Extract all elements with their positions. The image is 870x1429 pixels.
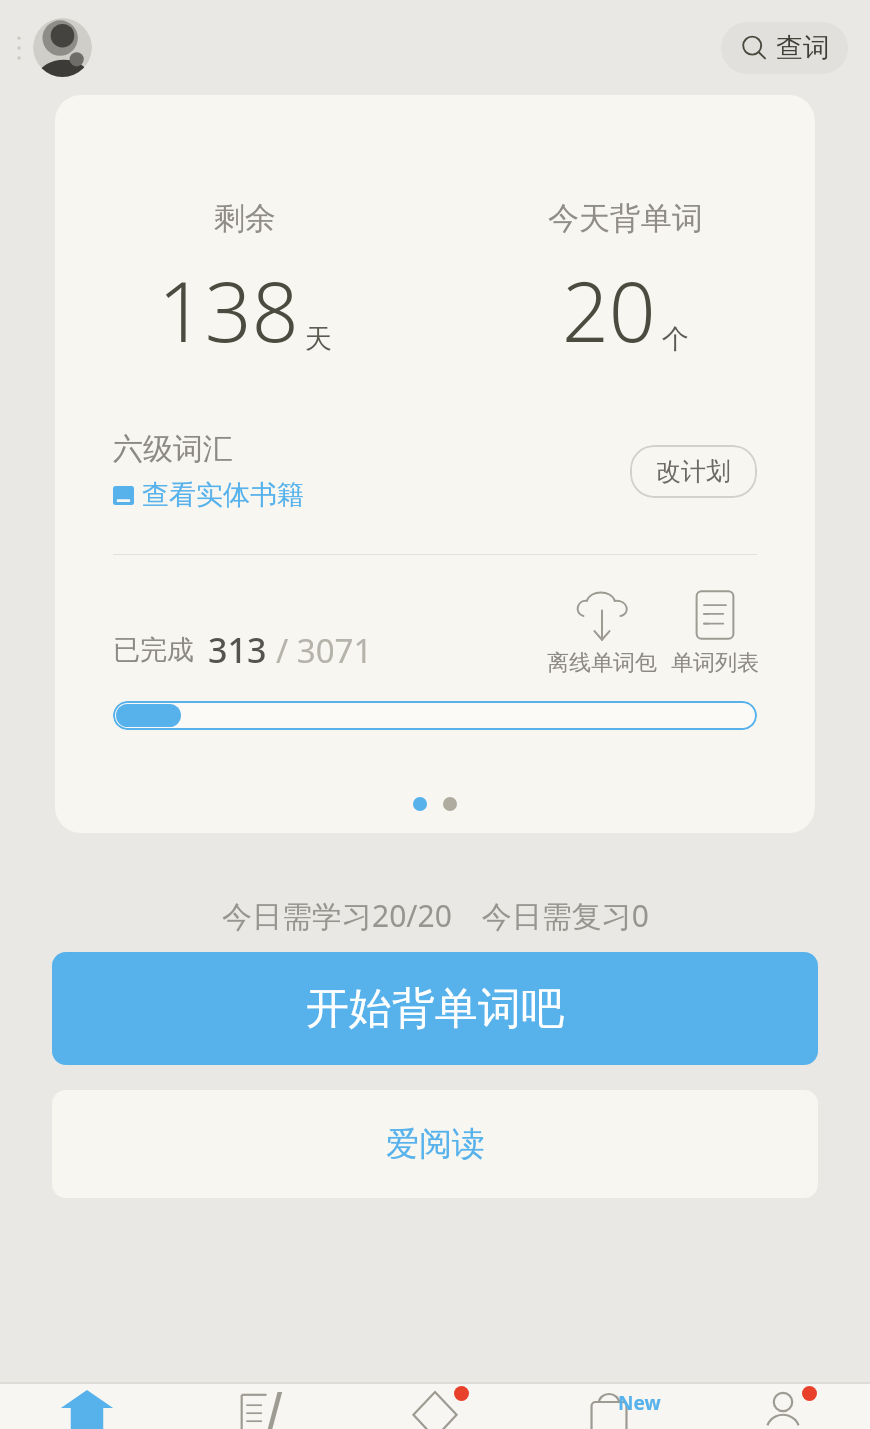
staticText: 离线单词包: [547, 649, 657, 677]
button[interactable]: Offline word pack: [547, 589, 657, 677]
staticText: / 3071: [276, 628, 373, 673]
button[interactable]: Word list: [671, 589, 759, 677]
other: Offline word pack: [573, 589, 631, 643]
staticText: 查词: [776, 31, 830, 65]
staticText: New: [618, 1390, 661, 1416]
staticText: 剩余: [214, 199, 276, 238]
button[interactable]: More options: [8, 26, 30, 70]
button[interactable]: 爱阅读: [52, 1090, 818, 1198]
staticText: 已完成: [113, 633, 194, 667]
staticText: 开始背单词吧: [306, 982, 564, 1036]
staticText: 20: [562, 254, 656, 366]
button[interactable]: 查词: [721, 22, 848, 74]
button[interactable]: Profile: [33, 18, 92, 77]
button[interactable]: Notes: [174, 1384, 348, 1429]
button[interactable]: 改计划: [630, 445, 757, 498]
staticText: 改计划: [656, 456, 731, 487]
button[interactable]: 查看实体书籍: [113, 478, 304, 512]
staticText: 查看实体书籍: [142, 478, 304, 512]
staticText: 个: [662, 322, 689, 356]
staticText: 今日需学习20/20 今日需复习0: [222, 895, 649, 936]
button[interactable]: Discover: [348, 1384, 522, 1429]
staticText: 爱阅读: [386, 1123, 485, 1165]
button[interactable]: 开始背单词吧: [52, 952, 818, 1065]
staticText: 单词列表: [671, 649, 759, 677]
other: Word list: [692, 589, 738, 643]
button[interactable]: Home: [0, 1384, 174, 1429]
staticText: 天: [305, 322, 332, 356]
button[interactable]: Me: [696, 1384, 870, 1429]
staticText: 313: [208, 627, 267, 673]
staticText: 今天背单词: [548, 199, 703, 238]
button[interactable]: Store: [522, 1384, 696, 1429]
staticText: 138: [158, 254, 299, 366]
staticText: 六级词汇: [113, 430, 233, 468]
